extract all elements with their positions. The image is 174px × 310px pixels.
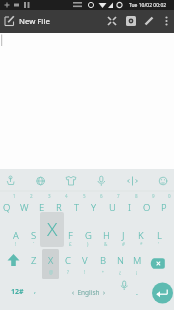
button[interactable]: E <box>34 196 50 218</box>
button[interactable] <box>2 171 20 190</box>
button[interactable]: X <box>43 249 59 271</box>
staticText: N <box>117 254 124 267</box>
staticText: V <box>82 254 88 267</box>
staticText: ¿ <box>119 269 121 275</box>
staticText: I <box>128 201 131 214</box>
button[interactable] <box>159 12 174 31</box>
staticText: X <box>47 216 58 242</box>
button[interactable]: J <box>115 224 131 246</box>
staticText: ? <box>67 269 69 275</box>
staticText: K <box>138 229 144 242</box>
staticText: ! <box>15 241 17 247</box>
staticText: 12# <box>11 287 24 297</box>
button[interactable] <box>141 12 158 31</box>
staticText: ‹ English › <box>72 288 105 297</box>
staticText: ! <box>84 269 86 275</box>
button[interactable]: F <box>62 224 78 246</box>
staticText: • <box>102 269 104 275</box>
button[interactable]: . <box>130 281 144 305</box>
staticText: Y <box>91 201 97 214</box>
staticText: U <box>109 201 116 214</box>
staticText: T <box>74 201 80 214</box>
button[interactable]: 12# <box>4 279 30 305</box>
button[interactable] <box>124 171 142 190</box>
button[interactable]: A <box>8 224 24 246</box>
staticText: @ <box>49 269 54 275</box>
button[interactable]: K <box>133 224 149 246</box>
button[interactable] <box>114 278 134 306</box>
button[interactable] <box>122 12 140 31</box>
staticText: P <box>161 201 167 214</box>
button[interactable] <box>150 280 174 306</box>
button[interactable] <box>154 171 172 190</box>
staticText: 7 <box>117 193 120 199</box>
staticText: * <box>140 241 143 247</box>
staticText: ' <box>158 241 160 247</box>
staticText: E <box>39 201 45 214</box>
button[interactable] <box>2 248 24 278</box>
button[interactable]: M <box>129 249 145 271</box>
staticText: , <box>34 286 36 296</box>
staticText: Q <box>3 201 11 214</box>
button[interactable]: V <box>77 249 93 271</box>
button[interactable]: B <box>95 249 111 271</box>
button[interactable]: H <box>98 224 114 246</box>
button[interactable]: Z <box>26 249 42 271</box>
staticText: L <box>157 229 162 242</box>
staticText: S <box>31 229 37 242</box>
staticText: A <box>13 229 19 242</box>
staticText: B <box>100 254 106 267</box>
staticText: M <box>133 254 142 267</box>
button[interactable] <box>62 171 80 190</box>
staticText: £ <box>69 241 72 247</box>
button[interactable]: I <box>121 196 137 218</box>
staticText: X <box>48 254 54 267</box>
staticText: Z <box>31 254 37 267</box>
staticText: O <box>143 201 151 214</box>
button[interactable]: G <box>80 224 96 246</box>
staticText: Tue 10/02 00:02 <box>129 2 167 9</box>
button[interactable]: S <box>26 224 42 246</box>
button[interactable]: T <box>69 196 85 218</box>
staticText: H <box>103 229 110 242</box>
button[interactable]: L <box>151 224 167 246</box>
button[interactable]: N <box>112 249 128 271</box>
button[interactable] <box>40 212 64 247</box>
staticText: 9 <box>152 193 155 199</box>
staticText: 2 <box>30 193 33 199</box>
staticText: 8 <box>135 193 138 199</box>
button[interactable]: ‹ English › <box>58 279 118 305</box>
staticText: 0 <box>168 193 171 199</box>
staticText: & <box>104 241 108 247</box>
staticText: ¡ <box>136 269 138 275</box>
staticText: C <box>65 254 71 267</box>
staticText: # <box>122 241 125 247</box>
button[interactable]: P <box>156 196 172 218</box>
staticText: F <box>68 229 73 242</box>
staticText: ) <box>87 241 89 247</box>
button[interactable]: W <box>16 196 32 218</box>
staticText: New File <box>19 16 50 27</box>
button[interactable] <box>146 248 172 278</box>
button[interactable]: Y <box>86 196 102 218</box>
staticText: G <box>85 229 92 242</box>
staticText: 1 <box>13 193 16 199</box>
button[interactable]: U <box>104 196 120 218</box>
button[interactable]: R <box>51 196 67 218</box>
staticText: 5 <box>83 193 86 199</box>
staticText: J <box>122 229 125 242</box>
button[interactable]: , <box>28 279 42 303</box>
button[interactable] <box>92 171 110 190</box>
staticText: R <box>56 201 62 214</box>
button[interactable]: Q <box>0 196 15 218</box>
button[interactable] <box>103 12 121 31</box>
staticText: 3 <box>48 193 51 199</box>
button[interactable]: C <box>60 249 76 271</box>
staticText: ` <box>33 241 35 247</box>
staticText: W <box>20 201 29 214</box>
button[interactable] <box>31 171 49 190</box>
staticText: 4 <box>65 193 68 199</box>
staticText: 6 <box>100 193 103 199</box>
button[interactable]: O <box>139 196 155 218</box>
staticText: . <box>136 288 138 298</box>
